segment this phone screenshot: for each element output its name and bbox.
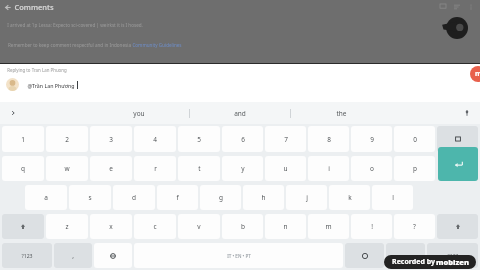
button[interactable]: n	[265, 214, 306, 239]
button[interactable]: y	[222, 156, 263, 181]
staticText: u	[283, 164, 288, 173]
staticText: Comments	[14, 2, 54, 12]
staticText: 1	[21, 135, 25, 144]
button[interactable]: v	[178, 214, 220, 239]
button[interactable]: 2	[46, 126, 88, 152]
staticText: r	[154, 164, 157, 173]
staticText: k	[348, 193, 352, 202]
button[interactable]: ?123	[2, 243, 52, 268]
button[interactable]: 9	[351, 126, 392, 152]
staticText: Remember to keep comment respectful and …	[7, 42, 132, 48]
button[interactable]: 4	[134, 126, 176, 152]
staticText: 5	[197, 135, 201, 144]
button[interactable]: p	[394, 156, 435, 181]
staticText: y	[241, 164, 245, 173]
button[interactable]: m	[308, 214, 349, 239]
button[interactable]: ?	[394, 214, 435, 239]
button[interactable]: a	[25, 185, 67, 210]
button[interactable]: Cast	[436, 0, 450, 14]
staticText: 8	[327, 135, 331, 144]
button[interactable]: Enter	[438, 147, 478, 181]
staticText: h	[261, 193, 266, 202]
button[interactable]: 5	[178, 126, 220, 152]
button[interactable]: z	[46, 214, 88, 239]
button[interactable]: c	[134, 214, 176, 239]
button[interactable]: l	[372, 185, 413, 210]
button[interactable]: k	[329, 185, 370, 210]
button[interactable]: Shift	[2, 214, 44, 239]
button[interactable]: .	[386, 243, 425, 268]
button[interactable]: Sort	[450, 0, 464, 14]
button[interactable]: Emoji	[94, 243, 132, 268]
staticText: c	[153, 222, 157, 231]
staticText: a	[44, 193, 48, 202]
button[interactable]: 6	[222, 126, 263, 152]
button[interactable]: o	[351, 156, 392, 181]
button[interactable]: f	[157, 185, 198, 210]
button[interactable]: 0	[394, 126, 435, 152]
staticText: Replying to Tran Lan Phuong	[7, 67, 67, 73]
staticText: ?	[413, 222, 416, 231]
button[interactable]: Backspace	[437, 126, 478, 152]
button[interactable]: s	[69, 185, 111, 210]
staticText: .	[405, 251, 407, 260]
button[interactable]: b	[222, 214, 263, 239]
button[interactable]: 7	[265, 126, 306, 152]
staticText: f	[176, 193, 179, 202]
staticText: m	[475, 69, 480, 79]
button[interactable]: d	[113, 185, 155, 210]
staticText: z	[65, 222, 69, 231]
button[interactable]: t	[178, 156, 220, 181]
button[interactable]: r	[134, 156, 176, 181]
button[interactable]: 1	[2, 126, 44, 152]
staticText: s	[88, 193, 92, 202]
button[interactable]: 8	[308, 126, 349, 152]
button[interactable]: e	[90, 156, 132, 181]
button[interactable]: x	[90, 214, 132, 239]
staticText: 7	[284, 135, 288, 144]
button[interactable]: !	[351, 214, 392, 239]
button[interactable]: q	[2, 156, 44, 181]
button[interactable]: Expand toolbar	[0, 102, 26, 124]
button[interactable]: Your profile	[6, 78, 19, 91]
button[interactable]: and	[190, 102, 290, 124]
staticText: @Trần Lan Phương	[27, 82, 75, 89]
button[interactable]: the	[291, 102, 391, 124]
staticText: the	[336, 109, 347, 118]
button[interactable]: Voice input	[454, 102, 480, 124]
staticText: Recorded by	[391, 257, 436, 267]
button[interactable]: u	[265, 156, 306, 181]
staticText: e	[109, 164, 113, 173]
staticText: x	[109, 222, 113, 231]
staticText: 3	[109, 135, 113, 144]
button[interactable]: g	[200, 185, 241, 210]
button[interactable]: you	[89, 102, 189, 124]
staticText: o	[370, 164, 374, 173]
staticText: 6	[241, 135, 245, 144]
staticText: ?123	[447, 252, 459, 259]
button[interactable]: Shift	[437, 214, 478, 239]
button[interactable]: Keyboard options	[345, 243, 384, 268]
button[interactable]: Account	[470, 66, 480, 82]
staticText: ?123	[21, 252, 33, 259]
button[interactable]: Back	[0, 0, 14, 14]
button[interactable]: i	[308, 156, 349, 181]
button[interactable]: ?123	[427, 243, 478, 268]
staticText: 2	[65, 135, 69, 144]
button[interactable]: IT • EN • PT	[134, 243, 343, 268]
staticText: ,	[72, 251, 74, 260]
staticText: b	[241, 222, 245, 231]
staticText: and	[234, 109, 246, 118]
staticText: i	[328, 164, 330, 173]
button[interactable]: 3	[90, 126, 132, 152]
staticText: I arrived at 1p Lessa: Expecto sci-cover…	[7, 22, 143, 28]
staticText: m	[325, 222, 332, 231]
staticText: v	[197, 222, 201, 231]
staticText: 9	[370, 135, 374, 144]
button[interactable]: j	[286, 185, 327, 210]
staticText: d	[132, 193, 136, 202]
button[interactable]: h	[243, 185, 284, 210]
button[interactable]: w	[46, 156, 88, 181]
